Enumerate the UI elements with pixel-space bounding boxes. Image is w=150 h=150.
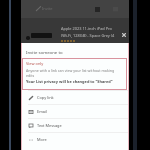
staticText: Copy link — [37, 95, 54, 100]
button[interactable]: Text Message — [21, 119, 129, 132]
staticText: Anyone with a link can view your list wi… — [26, 68, 115, 73]
staticText: Invite someone to — [26, 49, 63, 55]
button[interactable]: Close — [119, 30, 129, 40]
button[interactable]: Wishlist — [111, 5, 120, 14]
button[interactable]: Copy link — [21, 91, 129, 104]
staticText: More — [37, 137, 47, 142]
staticText: Email — [37, 109, 47, 114]
button[interactable]: More — [21, 133, 129, 146]
staticText: Your List privacy will be changed to "Sh… — [26, 79, 113, 84]
staticText: Text Message — [37, 123, 62, 128]
button[interactable]: Email — [21, 105, 129, 118]
staticText: Invite — [42, 6, 53, 11]
button[interactable]: Cart — [93, 5, 102, 14]
staticText: edits — [26, 73, 35, 78]
staticText: View only — [26, 61, 44, 66]
staticText: (Wi-Fi, 128GB) - Space Grey (4 — [61, 33, 115, 38]
staticText: Apple 2023 11-inch iPad Pro — [61, 26, 112, 31]
